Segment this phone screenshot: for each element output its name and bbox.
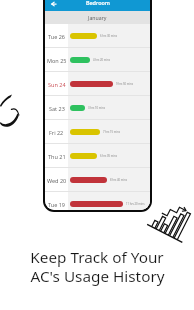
staticText: 11 hrs 20 mins — [126, 202, 145, 206]
staticText: Tue 19 — [48, 201, 66, 208]
staticText: AC's Usage History — [30, 266, 165, 287]
button[interactable]: Back — [47, 0, 60, 9]
staticText: 8 hrs 40 mins — [110, 178, 127, 182]
staticText: 7 hrs 15 mins — [103, 130, 120, 134]
staticText: Tue 26 — [48, 33, 66, 40]
staticText: Bedroom — [86, 0, 110, 6]
staticText: Thu 21 — [48, 153, 66, 160]
staticText: Wed 20 — [47, 177, 67, 184]
staticText: Fri 22 — [49, 129, 64, 136]
staticText: Sun 24 — [48, 81, 66, 88]
staticText: 9 hrs 50 mins — [116, 82, 133, 86]
button[interactable]: Wed 20 — [45, 168, 150, 192]
staticText: 3 hrs 10 mins — [88, 106, 105, 110]
staticText: Keep Track of Your — [30, 247, 164, 268]
staticText: 6 hrs 05 mins — [100, 154, 117, 158]
staticText: January — [88, 14, 107, 21]
button[interactable]: Mon 25 — [45, 48, 150, 72]
staticText: Sat 23 — [49, 105, 65, 112]
button[interactable]: Thu 21 — [45, 144, 150, 168]
button[interactable]: Tue 26 — [45, 24, 150, 48]
button[interactable]: Fri 22 — [45, 120, 150, 144]
staticText: 6 hrs 30 mins — [100, 34, 117, 38]
staticText: Mon 25 — [47, 57, 67, 64]
button[interactable]: Sat 23 — [45, 96, 150, 120]
button[interactable]: Sun 24 — [45, 72, 150, 96]
staticText: 4 hrs 20 mins — [93, 58, 110, 62]
button[interactable]: Tue 19 — [45, 192, 150, 210]
